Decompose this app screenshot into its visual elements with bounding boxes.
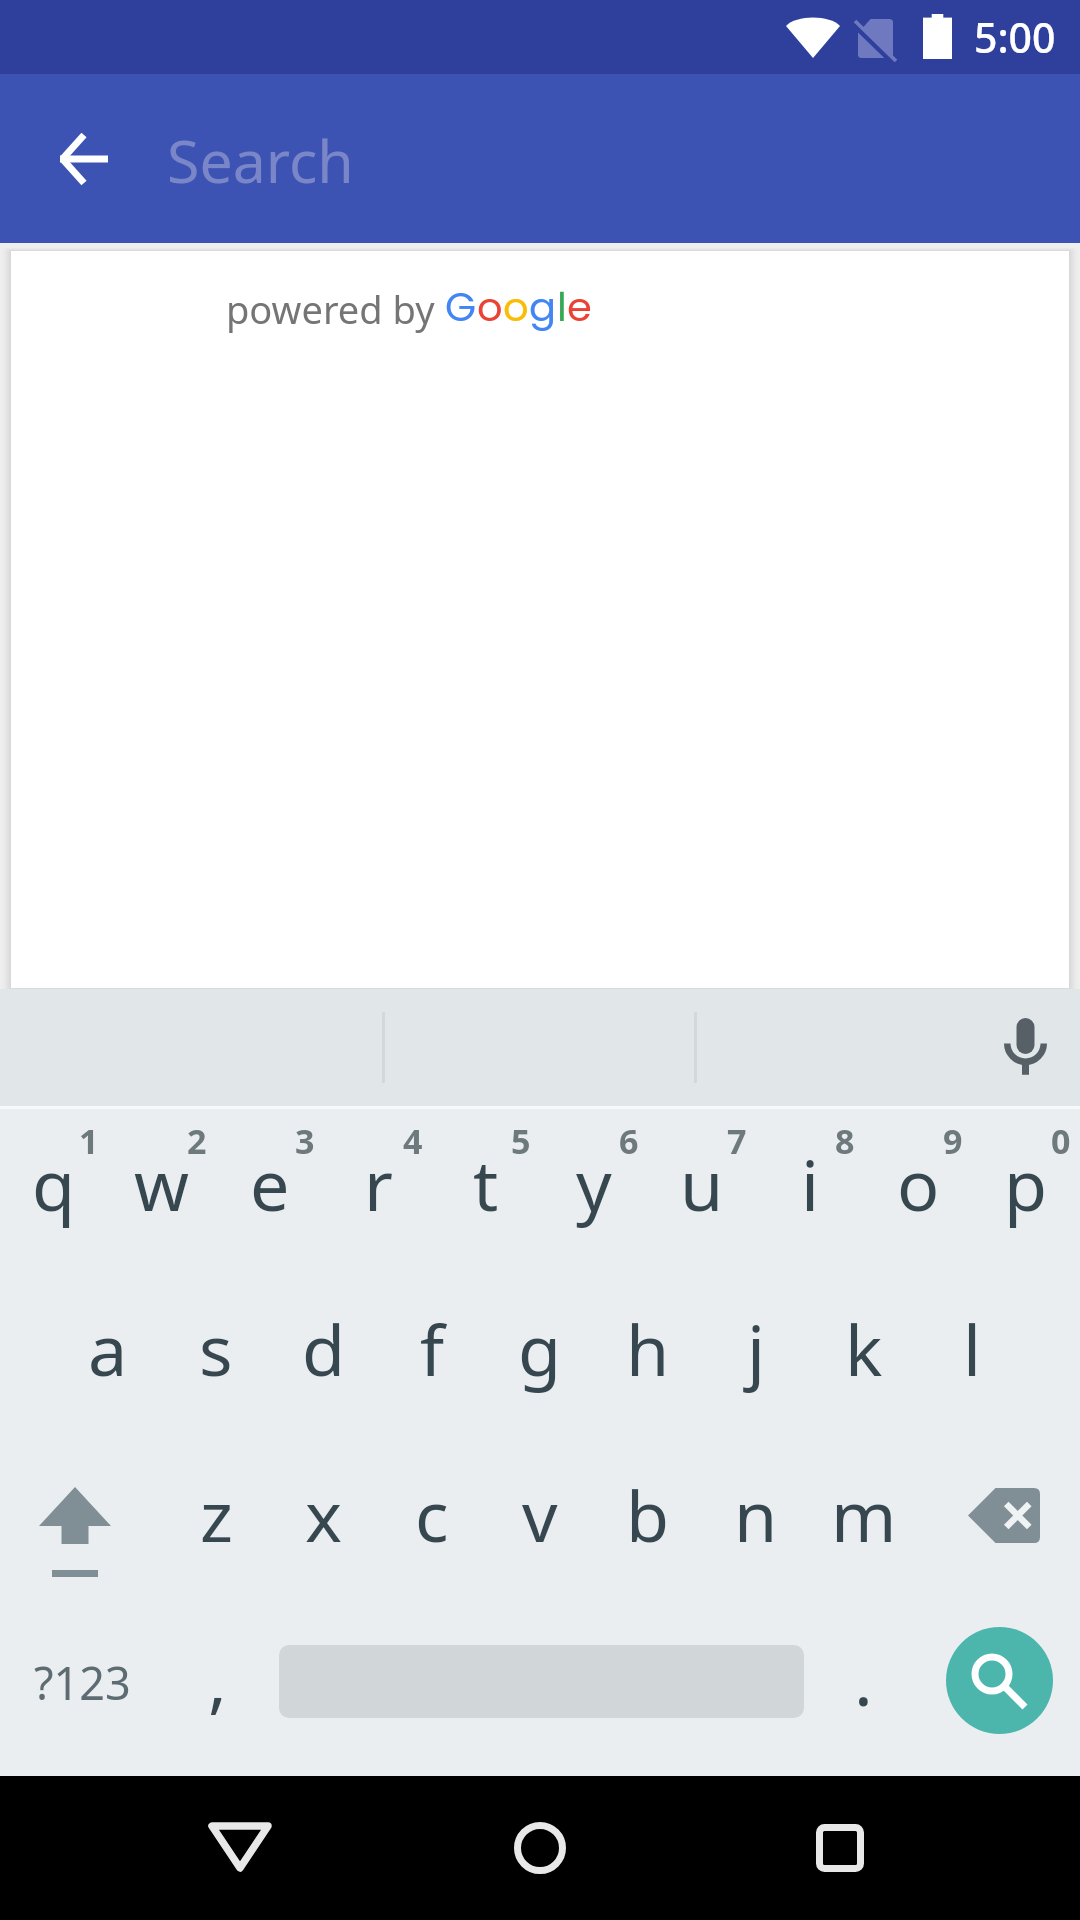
staticText: 8 (835, 1118, 855, 1164)
button[interactable]: Recent apps (780, 1776, 900, 1920)
button[interactable]: m (810, 1441, 918, 1609)
button[interactable]: Delete (918, 1441, 1080, 1609)
button[interactable]: a (54, 1274, 162, 1441)
staticText: z (200, 1467, 233, 1562)
button[interactable]: 2 (108, 1106, 216, 1274)
staticText: s (199, 1301, 233, 1396)
staticText: i (801, 1136, 820, 1231)
button[interactable]: 8 (756, 1106, 864, 1274)
button[interactable]: l (918, 1274, 1026, 1441)
staticText: 5 (511, 1118, 531, 1164)
staticText: w (134, 1136, 190, 1231)
staticText: 5:00 (974, 9, 1056, 65)
staticText: ?123 (34, 1652, 131, 1713)
button[interactable]: d (270, 1274, 378, 1441)
staticText: j (747, 1301, 766, 1396)
button[interactable]: g (486, 1274, 594, 1441)
button[interactable]: h (594, 1274, 702, 1441)
staticText: 7 (727, 1118, 747, 1164)
staticText: 3 (295, 1118, 315, 1164)
staticText: 9 (943, 1118, 963, 1164)
staticText: o (897, 1136, 940, 1231)
staticText: v (522, 1467, 558, 1562)
staticText: k (845, 1301, 883, 1396)
button[interactable]: f (378, 1274, 486, 1441)
staticText: Search (167, 120, 354, 200)
staticText: y (576, 1136, 612, 1231)
staticText: q (32, 1136, 76, 1231)
staticText: powered by (226, 283, 435, 335)
button[interactable]: 1 (0, 1106, 108, 1274)
button[interactable]: 9 (864, 1106, 972, 1274)
staticText: a (88, 1301, 128, 1396)
button[interactable]: b (594, 1441, 702, 1609)
staticText: p (1004, 1136, 1048, 1231)
staticText: o (477, 279, 503, 335)
staticText: . (854, 1631, 873, 1726)
button[interactable]: Back (180, 1776, 300, 1920)
staticText: e (250, 1136, 290, 1231)
button[interactable]: Navigate up (24, 99, 144, 219)
button[interactable]: Voice input (970, 989, 1080, 1106)
button[interactable]: 5 (432, 1106, 540, 1274)
staticText: m (831, 1467, 897, 1562)
staticText: 0 (1051, 1118, 1071, 1164)
button[interactable]: c (378, 1441, 486, 1609)
staticText: 1 (79, 1118, 99, 1164)
staticText: g (518, 1301, 562, 1396)
staticText: n (734, 1467, 778, 1562)
staticText: r (364, 1136, 393, 1231)
button[interactable]: Search (946, 1627, 1053, 1734)
staticText: 4 (403, 1118, 423, 1164)
staticText: e (567, 279, 592, 335)
button[interactable]: 7 (648, 1106, 756, 1274)
button[interactable]: 0 (972, 1106, 1080, 1274)
staticText: u (680, 1136, 724, 1231)
button[interactable]: Home (480, 1776, 600, 1920)
button[interactable]: n (702, 1441, 810, 1609)
staticText: f (420, 1301, 445, 1396)
button[interactable]: 3 (216, 1106, 324, 1274)
staticText: 6 (619, 1118, 639, 1164)
button[interactable]: z (162, 1441, 270, 1609)
button[interactable]: Shift (0, 1441, 162, 1609)
staticText: t (473, 1136, 499, 1231)
staticText: l (557, 279, 567, 335)
staticText: x (305, 1467, 343, 1562)
button[interactable]: x (270, 1441, 378, 1609)
staticText: o (503, 279, 529, 335)
button[interactable]: k (810, 1274, 918, 1441)
staticText: b (626, 1467, 670, 1562)
staticText: l (963, 1301, 982, 1396)
staticText: h (626, 1301, 670, 1396)
button[interactable]: 6 (540, 1106, 648, 1274)
button[interactable] (270, 1609, 810, 1776)
staticText: g (529, 279, 557, 335)
button[interactable]: . (810, 1609, 918, 1776)
staticText: G (445, 279, 477, 335)
button[interactable]: ?123 (0, 1609, 162, 1776)
button[interactable]: , (162, 1609, 270, 1776)
button[interactable]: v (486, 1441, 594, 1609)
staticText: d (302, 1301, 346, 1396)
staticText: , (208, 1631, 227, 1726)
staticText: c (415, 1467, 449, 1562)
button[interactable]: 4 (324, 1106, 432, 1274)
button[interactable]: j (702, 1274, 810, 1441)
staticText: 2 (187, 1118, 207, 1164)
button[interactable]: s (162, 1274, 270, 1441)
